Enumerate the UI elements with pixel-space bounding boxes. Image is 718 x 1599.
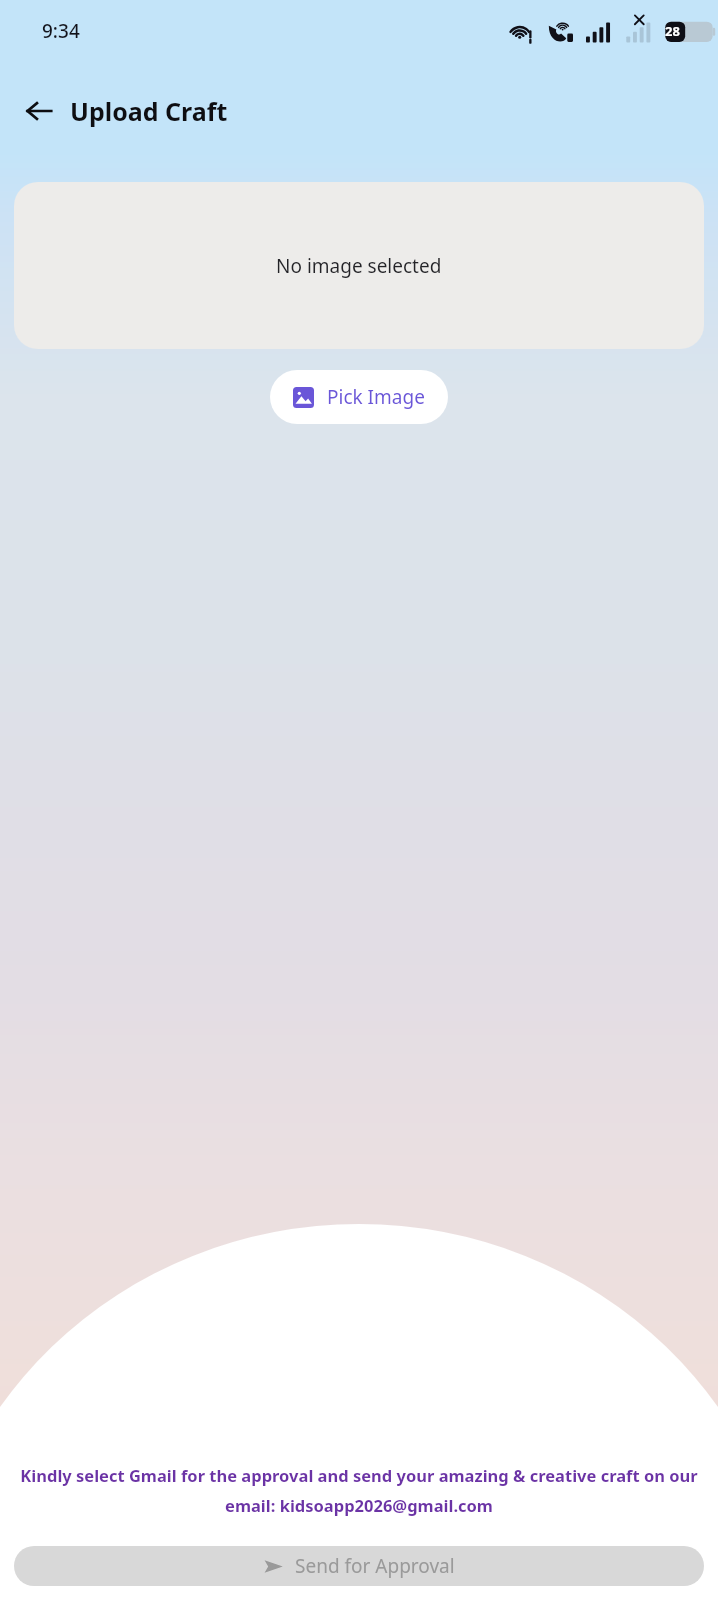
staticText: 28	[665, 22, 680, 40]
staticText: Upload Craft	[70, 94, 228, 128]
button[interactable]: No image selected	[14, 182, 704, 349]
button[interactable]: Back	[16, 88, 62, 134]
staticText: 9:34	[42, 18, 80, 44]
staticText: No image selected	[276, 253, 442, 279]
staticText: Send for Approval	[295, 1553, 455, 1579]
staticText: Pick Image	[327, 384, 425, 410]
button[interactable]: Pick Image	[270, 370, 448, 424]
staticText: Kindly select Gmail for the approval and…	[18, 1464, 700, 1516]
button[interactable]: Send for Approval	[14, 1546, 704, 1586]
